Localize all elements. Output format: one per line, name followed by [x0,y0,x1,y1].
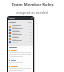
staticText: Team Member Roles [11,2,54,8]
button[interactable] [8,31,33,34]
button[interactable] [8,40,33,43]
button[interactable] [8,34,33,37]
button[interactable] [8,49,33,59]
button[interactable] [8,25,33,28]
button[interactable] [8,28,33,31]
button[interactable] [8,37,33,40]
button[interactable] [8,59,33,65]
staticText: assigned as needed [16,10,48,15]
button[interactable] [8,65,33,72]
button[interactable]: App bar [8,17,33,20]
